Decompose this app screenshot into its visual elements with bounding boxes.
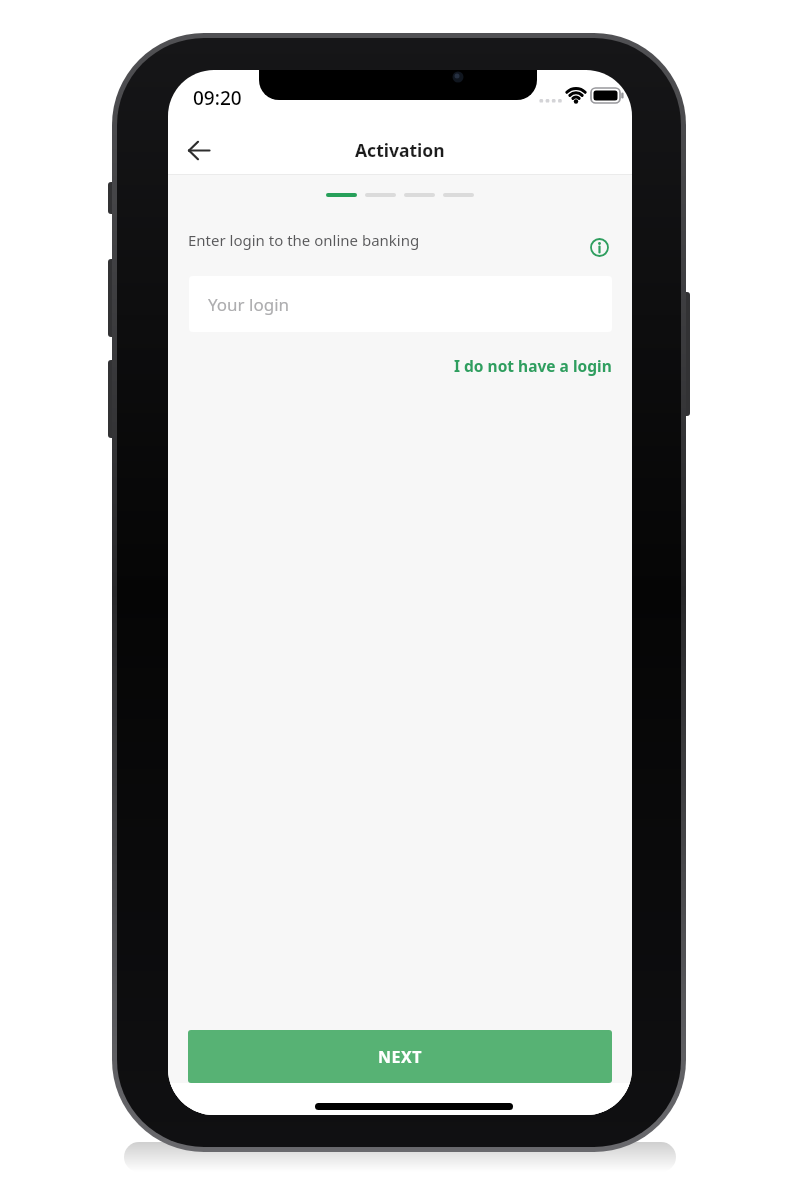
button[interactable]	[582, 230, 616, 264]
button[interactable]: Your login	[189, 276, 612, 332]
staticText: NEXT	[378, 1046, 422, 1068]
staticText: I do not have a login	[454, 355, 612, 376]
staticText: Your login	[208, 293, 290, 316]
staticText: Enter login to the online banking	[188, 230, 420, 250]
button[interactable]: NEXT	[188, 1030, 612, 1083]
staticText: Activation	[355, 138, 445, 162]
button[interactable]: I do not have a login	[444, 352, 612, 378]
staticText: 09:20	[193, 85, 242, 111]
button[interactable]	[176, 131, 222, 169]
